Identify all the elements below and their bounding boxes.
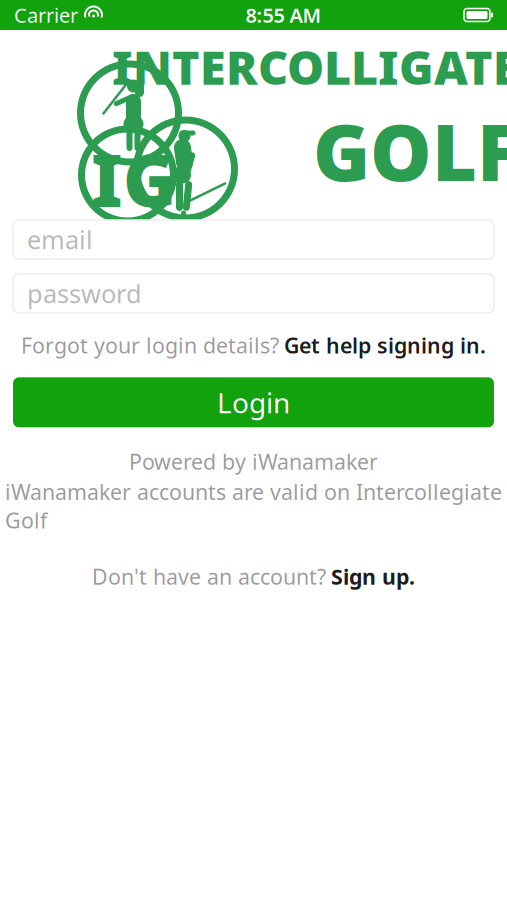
- staticText: password: [27, 277, 142, 310]
- staticText: iWanamaker accounts are valid on Interco…: [5, 478, 502, 534]
- staticText: email: [27, 223, 93, 256]
- staticText: Get help signing in.: [284, 331, 486, 359]
- staticText: Don't have an account?: [92, 562, 326, 591]
- staticText: IG: [91, 131, 176, 227]
- staticText: GOLF: [313, 100, 507, 202]
- staticText: Carrier: [14, 2, 78, 28]
- staticText: Login: [217, 384, 290, 421]
- button[interactable]: Don't have an account?: [0, 556, 507, 597]
- button[interactable]: Login: [13, 377, 494, 427]
- button[interactable]: password: [13, 274, 494, 313]
- staticText: INTERCOLLIGATE: [112, 36, 507, 98]
- staticText: Sign up.: [331, 562, 415, 591]
- button[interactable]: email: [13, 220, 494, 259]
- staticText: Powered by iWanamaker: [129, 447, 378, 476]
- staticText: Forgot your login details?: [21, 331, 279, 359]
- button[interactable]: Forgot your login details?: [0, 325, 507, 365]
- staticText: 8:55 AM: [245, 2, 321, 28]
